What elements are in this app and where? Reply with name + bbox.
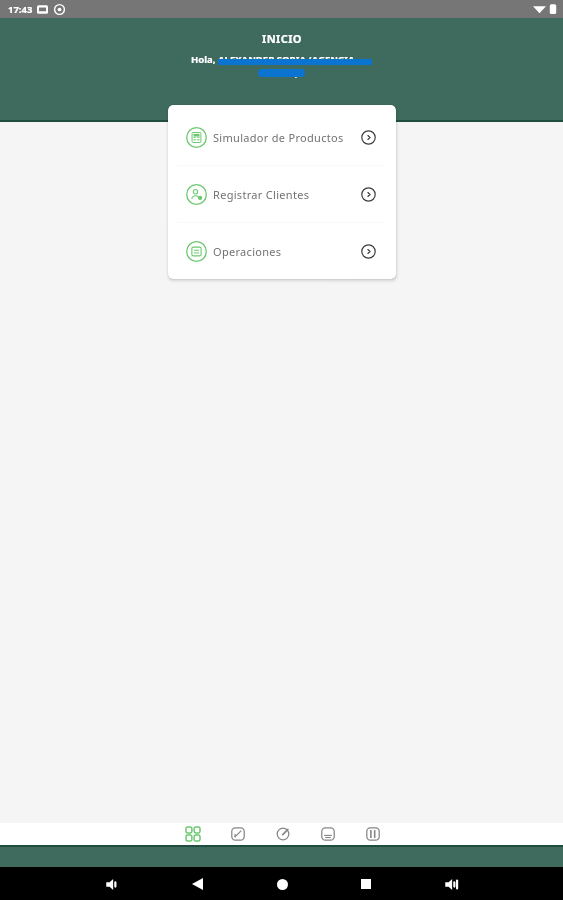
staticText: Operaciones — [213, 244, 282, 259]
staticText: Simulador de Productos — [213, 130, 344, 145]
button[interactable]: Reportes — [317, 823, 339, 845]
staticText: INICIO — [262, 31, 302, 46]
button[interactable]: Metas — [272, 823, 294, 845]
staticText: Hola, — [191, 53, 218, 66]
button[interactable]: Simulador de Productos — [168, 109, 396, 165]
button[interactable]: Clientes — [362, 823, 384, 845]
button[interactable]: Simulador — [227, 823, 249, 845]
button[interactable]: Volume up — [435, 868, 467, 900]
button[interactable]: Volume down — [96, 868, 128, 900]
button[interactable]: Recents — [350, 868, 382, 900]
button[interactable]: Operaciones — [168, 223, 396, 279]
button[interactable]: Inicio — [182, 823, 204, 845]
button[interactable]: Registrar Clientes — [168, 166, 396, 222]
staticText: PRINC) — [265, 66, 298, 79]
staticText: Registrar Clientes — [213, 187, 310, 202]
staticText: 17:43 — [8, 3, 33, 16]
button[interactable]: Home — [266, 868, 298, 900]
button[interactable]: Back — [181, 868, 213, 900]
staticText: ALEXANDER SORIA (AGENCIA — [218, 53, 355, 66]
